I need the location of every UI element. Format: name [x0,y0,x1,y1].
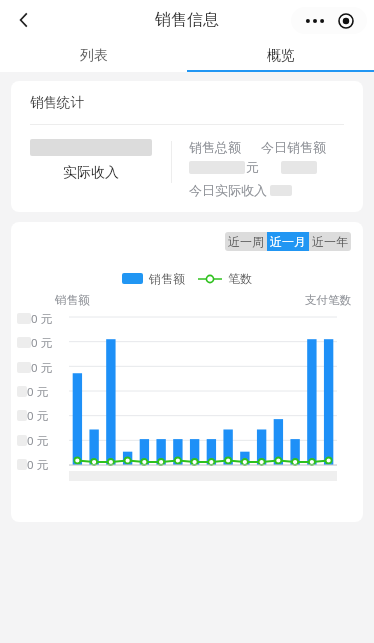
staticText: 支付笔数 [305,293,351,307]
button[interactable]: 近一年 [309,232,351,251]
staticText: 近一年 [312,234,348,249]
button[interactable]: 近一周 [225,232,267,251]
button[interactable]: More and Close [291,7,367,34]
staticText: 0 元 [27,384,49,398]
staticText: 销售额 [55,293,90,307]
staticText: 近一月 [270,234,306,249]
staticText: 销售统计 [30,94,84,111]
staticText: 概览 [267,47,295,65]
staticText: 近一周 [228,234,264,249]
staticText: 0 元 [27,408,49,422]
staticText: 笔数 [228,271,252,286]
staticText: 销售额 [149,271,185,286]
staticText: 今日销售额 [261,139,326,155]
staticText: 0 元 [31,335,53,349]
staticText: 元 [246,159,259,175]
staticText: 实际收入 [63,164,119,182]
button[interactable]: 近一月 [267,232,309,251]
staticText: 销售信息 [155,10,219,30]
staticText: 今日实际收入 [189,182,267,198]
staticText: 0 元 [31,360,53,374]
staticText: 0 元 [27,433,49,447]
staticText: 列表 [80,47,108,65]
button[interactable]: 概览 [187,40,374,72]
button[interactable]: Back [6,2,42,38]
staticText: 0 元 [31,311,53,325]
button[interactable]: 列表 [0,40,187,72]
staticText: 0 元 [27,457,49,471]
staticText: 销售总额 [189,139,241,155]
